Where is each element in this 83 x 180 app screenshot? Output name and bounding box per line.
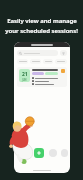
staticText: 21	[22, 71, 28, 78]
button[interactable]: Filter chip	[30, 59, 41, 64]
button[interactable]: Filter chip	[17, 59, 28, 64]
button[interactable]: Bookmark	[61, 69, 65, 73]
button[interactable]: Filter chip	[43, 59, 53, 64]
button[interactable]: Add session	[34, 148, 44, 158]
button[interactable]: Profile	[61, 149, 68, 157]
staticText: JUN	[22, 78, 27, 81]
staticText: Easily view and manage	[7, 17, 77, 25]
button[interactable]: 21	[17, 67, 67, 87]
button[interactable]: Filter	[60, 50, 67, 56]
button[interactable]: Settings	[49, 149, 57, 157]
button[interactable]: Filter chip	[55, 59, 67, 64]
button[interactable]	[17, 50, 58, 56]
staticText: your scheduled sessions!	[5, 27, 78, 35]
